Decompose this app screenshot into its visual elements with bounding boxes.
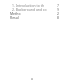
button[interactable]: 1. Introduction to th — [0, 3, 64, 7]
staticText: 8 — [57, 15, 59, 19]
staticText: 2. Background and co — [12, 7, 47, 11]
button[interactable]: Resul — [0, 15, 64, 19]
staticText: Metho — [10, 11, 21, 15]
button[interactable]: 2. Background and co — [0, 7, 64, 11]
staticText: 1. Introduction to th — [12, 3, 44, 7]
staticText: Resul — [10, 15, 19, 19]
staticText: 7 — [57, 3, 59, 7]
button[interactable]: Metho — [0, 11, 64, 15]
staticText: 9 — [57, 7, 59, 11]
staticText: 2 — [57, 11, 59, 15]
